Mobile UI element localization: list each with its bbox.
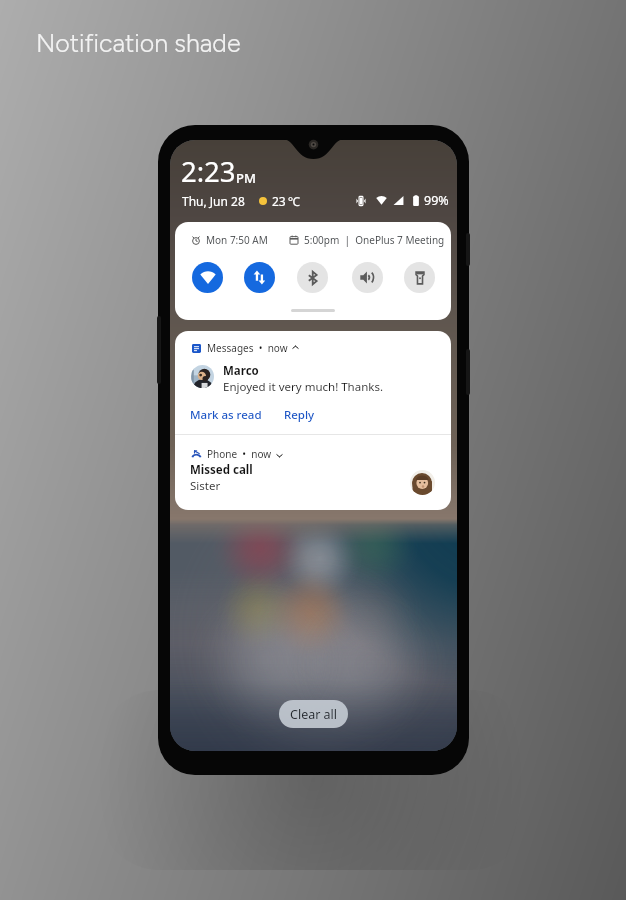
- staticText: Reply: [284, 407, 315, 423]
- staticText: 2:23: [181, 153, 236, 190]
- staticText: Mon 7:50 AM: [206, 233, 268, 247]
- staticText: Missed call: [190, 462, 253, 478]
- button[interactable]: Mobile data: [244, 262, 275, 293]
- button[interactable]: Mark as read: [189, 407, 263, 423]
- button[interactable]: Sound: [352, 262, 383, 293]
- staticText: Sister: [190, 478, 221, 494]
- button[interactable]: [175, 435, 451, 510]
- staticText: Thu, Jun 28: [182, 193, 245, 209]
- button[interactable]: Clear all: [279, 700, 348, 728]
- staticText: Phone • now: [207, 447, 272, 461]
- staticText: Messages • now: [207, 341, 288, 355]
- staticText: Marco: [223, 363, 259, 379]
- staticText: 99%: [424, 192, 449, 209]
- staticText: PM: [236, 169, 256, 187]
- staticText: 23 ℃: [272, 193, 300, 209]
- staticText: 5:00pm | OnePlus 7 Meeting: [304, 233, 445, 247]
- button[interactable]: Flashlight: [404, 262, 435, 293]
- button[interactable]: [175, 331, 451, 434]
- staticText: Clear all: [290, 706, 338, 723]
- staticText: Notification shade: [36, 28, 241, 58]
- button[interactable]: Wi-Fi: [192, 262, 223, 293]
- button[interactable]: Bluetooth: [297, 262, 328, 293]
- staticText: Mark as read: [190, 407, 262, 423]
- staticText: Enjoyed it very much! Thanks.: [223, 379, 384, 395]
- button[interactable]: Reply: [283, 407, 316, 423]
